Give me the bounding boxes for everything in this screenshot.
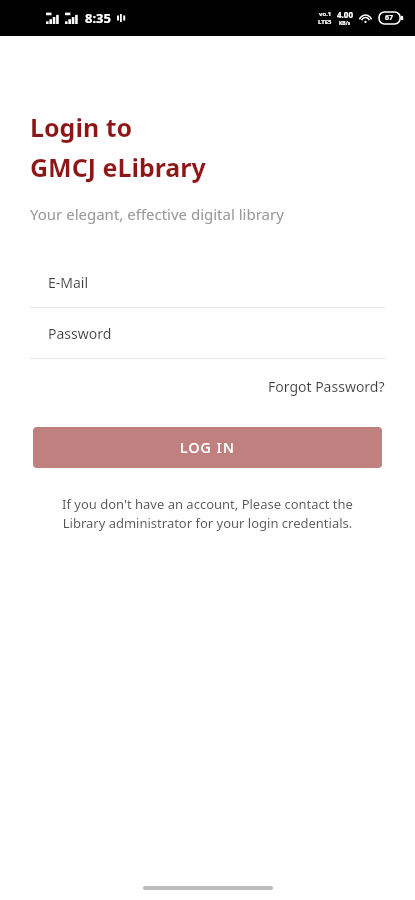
staticText: Your elegant, effective digital library — [30, 204, 284, 224]
staticText: 67 — [385, 13, 394, 23]
staticText: Forgot Password? — [268, 377, 385, 396]
button[interactable]: Forgot Password? — [252, 371, 415, 402]
staticText: vo.1 — [319, 10, 332, 18]
staticText: If you don't have an account, Please con… — [48, 495, 367, 532]
staticText: E-Mail — [48, 273, 89, 292]
staticText: KB/s — [339, 20, 351, 27]
button[interactable]: Password — [0, 308, 415, 359]
button[interactable]: LOG IN — [33, 427, 382, 468]
staticText: 4.00 — [337, 9, 353, 20]
button[interactable]: E-Mail — [0, 257, 415, 308]
staticText: Login to — [30, 110, 133, 144]
staticText: Password — [48, 324, 112, 343]
staticText: GMCJ eLibrary — [30, 150, 206, 184]
staticText: 8:35 — [85, 9, 111, 27]
staticText: LOG IN — [180, 438, 236, 457]
staticText: LTE5 — [318, 18, 332, 26]
